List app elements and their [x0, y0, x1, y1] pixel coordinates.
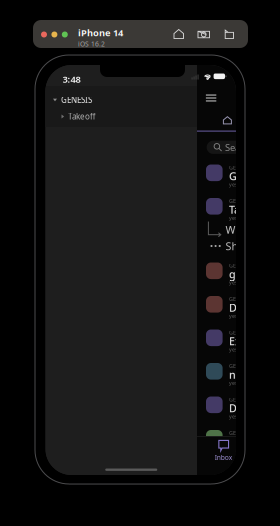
button[interactable]: Home [220, 114, 234, 127]
button[interactable]: GENESIS [197, 426, 280, 460]
button[interactable]: Inbox [212, 440, 236, 462]
staticText: iPhone 14 [78, 26, 123, 39]
staticText: Explore [229, 334, 268, 348]
staticText: Takeoff [229, 202, 267, 217]
staticText: GENESIS [229, 362, 251, 370]
button[interactable]: GENESIS [197, 161, 280, 194]
staticText: Show more [225, 239, 280, 253]
staticText: yesterday [229, 413, 254, 420]
button[interactable]: Rotate [222, 27, 235, 40]
button[interactable]: Search [207, 141, 280, 154]
button[interactable]: GENESIS [45, 93, 197, 106]
button[interactable]: GENESIS [197, 259, 280, 292]
button[interactable]: GENESIS [197, 292, 280, 326]
staticText: GENESIS [229, 329, 251, 336]
staticText: GENESIS [229, 197, 251, 205]
button[interactable]: Home [172, 27, 185, 40]
staticText: Inbox [215, 453, 233, 462]
button[interactable]: GENESIS [197, 194, 280, 228]
staticText: iOS 16.2 [78, 39, 105, 48]
button[interactable]: Write tests [197, 221, 280, 236]
staticText: Design [229, 401, 265, 415]
button[interactable]: Menu [203, 91, 219, 105]
staticText: yesterday [229, 181, 254, 188]
button[interactable]: GENESIS [197, 393, 280, 426]
button[interactable]: GENESIS [197, 326, 280, 359]
staticText: architecture [229, 434, 280, 449]
staticText: GENESIS [61, 95, 92, 105]
button[interactable]: Screenshot [196, 27, 211, 40]
staticText: Docs [229, 300, 254, 315]
button[interactable]: Show more [197, 241, 280, 254]
staticText: Takeoff [68, 111, 96, 122]
staticText: notes [229, 367, 258, 382]
staticText: yesterday [229, 279, 254, 286]
button[interactable]: GENESIS [197, 359, 280, 393]
staticText: yesterday [229, 312, 254, 320]
staticText: yesterday [229, 214, 254, 222]
staticText: yesterday [229, 346, 254, 353]
staticText: Search [225, 141, 254, 153]
button[interactable]: Takeoff [45, 110, 197, 123]
staticText: Genesis [229, 169, 269, 183]
staticText: GENESIS [229, 295, 251, 303]
staticText: GENESIS [229, 262, 251, 269]
staticText: GENESIS [229, 396, 251, 403]
staticText: GENESIS [229, 164, 251, 171]
staticText: 3:48 [62, 73, 80, 85]
staticText: git log [229, 267, 263, 281]
staticText: GENESIS [229, 429, 251, 437]
staticText: yesterday [229, 379, 254, 387]
staticText: yesterday [229, 446, 254, 454]
staticText: Write tests [225, 223, 279, 237]
